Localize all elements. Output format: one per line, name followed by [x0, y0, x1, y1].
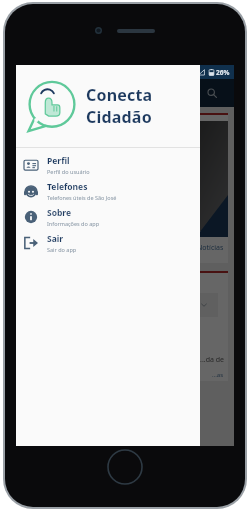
button[interactable]: Sobre	[16, 204, 200, 230]
staticText: Telefones	[47, 181, 88, 193]
staticText: Notícias	[197, 243, 224, 253]
staticText: Sair	[47, 233, 64, 245]
staticText: Conecta	[86, 84, 153, 106]
button[interactable]: Search	[202, 83, 222, 103]
staticText: Sair do app	[47, 246, 77, 253]
staticText: ...as	[212, 371, 224, 379]
staticText: Sobre	[47, 207, 72, 219]
button[interactable]: Sair	[16, 230, 200, 256]
staticText: 26%	[216, 68, 230, 77]
staticText: Perfil do usuário	[47, 168, 90, 175]
staticText: Telefones úteis de São José	[47, 194, 117, 201]
staticText: Informações do app	[47, 220, 100, 227]
button[interactable]: Telefones	[16, 178, 200, 204]
staticText: ...da de	[200, 355, 224, 365]
staticText: Perfil	[47, 155, 70, 167]
button[interactable]: Perfil	[16, 152, 200, 178]
staticText: Cidadão	[86, 106, 152, 128]
